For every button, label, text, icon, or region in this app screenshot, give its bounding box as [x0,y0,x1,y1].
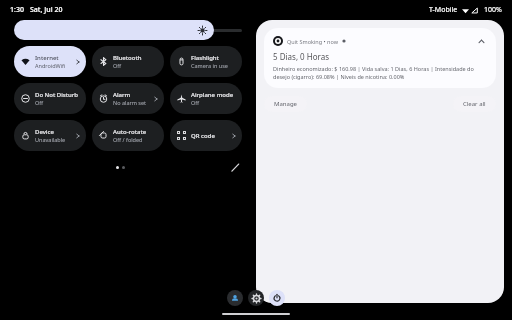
staticText: Unavailable [35,136,66,143]
button[interactable]: Manage [264,96,307,112]
staticText: 1:30 [10,5,24,15]
button[interactable]: Settings [248,290,264,306]
staticText: Off [191,99,200,106]
staticText: No alarm set [113,99,147,106]
button[interactable]: Do Not Disturb [14,83,86,114]
button[interactable]: QR code scanner [170,120,242,151]
staticText: Manage [274,100,297,108]
staticText: 5 Dias, 0 Horas [273,51,329,62]
staticText: Clear all [463,100,486,108]
staticText: Bluetooth [113,54,142,62]
staticText: Device control [35,128,75,136]
staticText: Off / folded [113,136,143,143]
staticText: Off [35,99,44,106]
staticText: Internet [35,54,59,62]
button[interactable]: Collapse notification [475,35,487,47]
button[interactable]: Bluetooth [92,46,164,77]
button[interactable]: Edit quick settings [228,160,242,174]
button[interactable]: Quit Smoking • now [264,28,496,88]
button[interactable]: Internet [14,46,86,77]
staticText: AndroidWifi [35,62,66,69]
button[interactable]: Device control [14,120,86,151]
staticText: Camera in use [191,62,228,69]
button[interactable]: Clear all [453,96,496,112]
button[interactable]: Alarm [92,83,164,114]
staticText: T-Mobile [429,5,458,15]
button[interactable]: User account [227,290,243,306]
staticText: QR code scanner [191,132,231,140]
staticText: Airplane mode [191,91,234,99]
button[interactable]: Flashlight [170,46,242,77]
button[interactable]: Power [269,290,285,306]
button[interactable]: Airplane mode [170,83,242,114]
staticText: Auto-rotate [113,128,147,136]
staticText: Off [113,62,122,69]
staticText: 100% [484,5,502,15]
staticText: Sat, Jul 20 [30,5,63,15]
staticText: Dinheiro economizado: $ 160.98 | Vida sa… [273,65,487,81]
staticText: Quit Smoking • now [287,38,339,45]
staticText: Do Not Disturb [35,91,79,99]
button[interactable]: Auto-rotate [92,120,164,151]
button[interactable] [14,20,214,40]
staticText: Flashlight [191,54,219,62]
staticText: Alarm [113,91,131,99]
